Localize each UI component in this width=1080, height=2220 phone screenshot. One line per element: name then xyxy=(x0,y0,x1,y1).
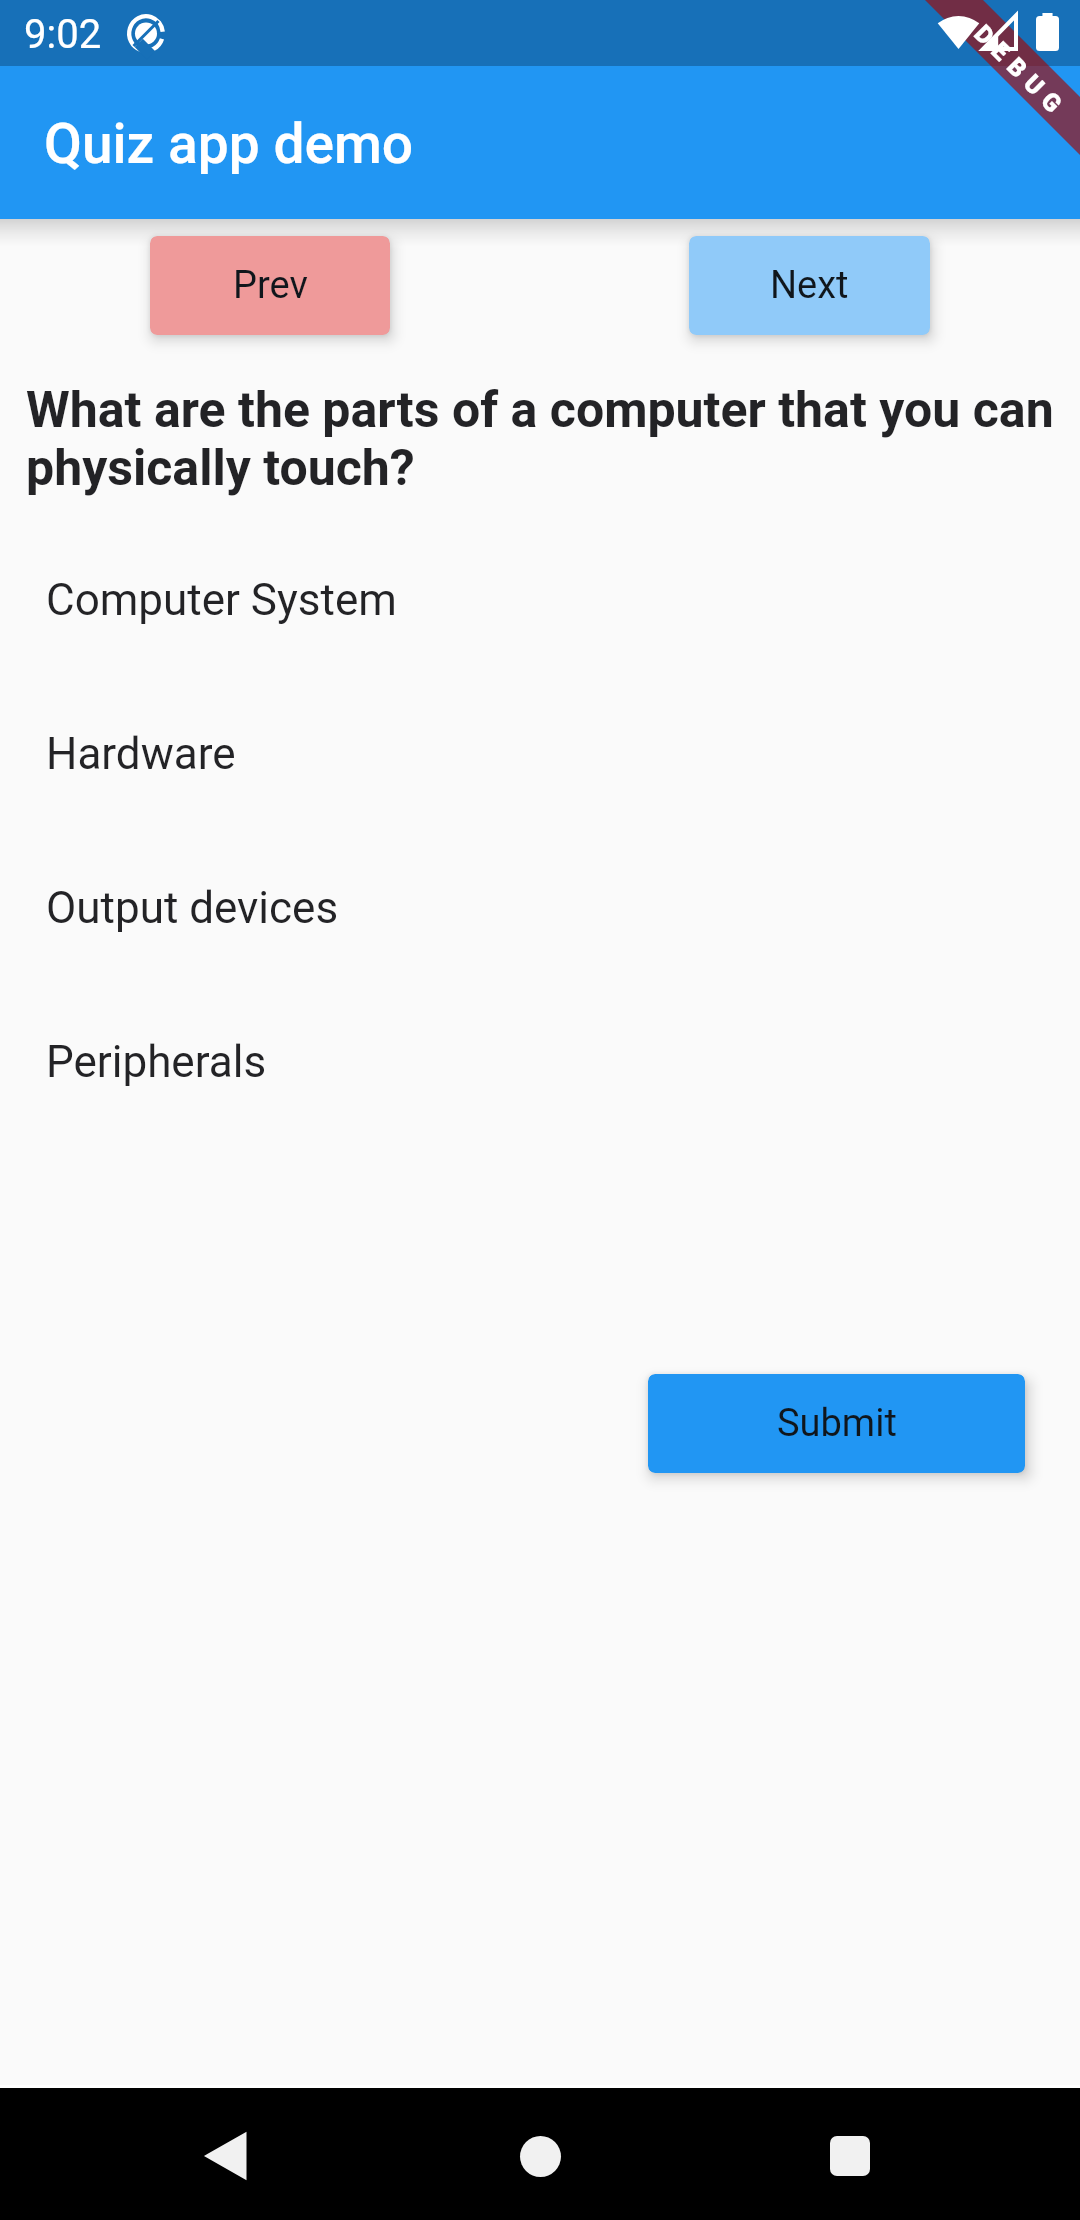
staticText: 9:02 xyxy=(24,11,102,58)
staticText: What are the parts of a computer that yo… xyxy=(26,381,1054,497)
button[interactable]: Peripherals xyxy=(0,1020,1080,1174)
staticText: Submit xyxy=(777,1401,897,1446)
button[interactable]: Back xyxy=(162,2092,290,2220)
staticText: Hardware xyxy=(46,728,236,780)
button[interactable]: Prev xyxy=(150,236,390,335)
staticText: Peripherals xyxy=(46,1036,267,1088)
button[interactable]: Submit xyxy=(648,1374,1025,1473)
button[interactable]: Next xyxy=(689,236,930,335)
staticText: Computer System xyxy=(46,574,397,626)
staticText: Prev xyxy=(233,263,308,308)
button[interactable]: Recent apps xyxy=(786,2092,914,2220)
button[interactable]: Computer System xyxy=(0,558,1080,712)
staticText: Quiz app demo xyxy=(44,112,414,176)
button[interactable]: Hardware xyxy=(0,712,1080,866)
button[interactable]: Output devices xyxy=(0,866,1080,1020)
staticText: Output devices xyxy=(46,882,339,934)
button[interactable]: Home xyxy=(476,2092,604,2220)
staticText: Next xyxy=(770,263,849,308)
